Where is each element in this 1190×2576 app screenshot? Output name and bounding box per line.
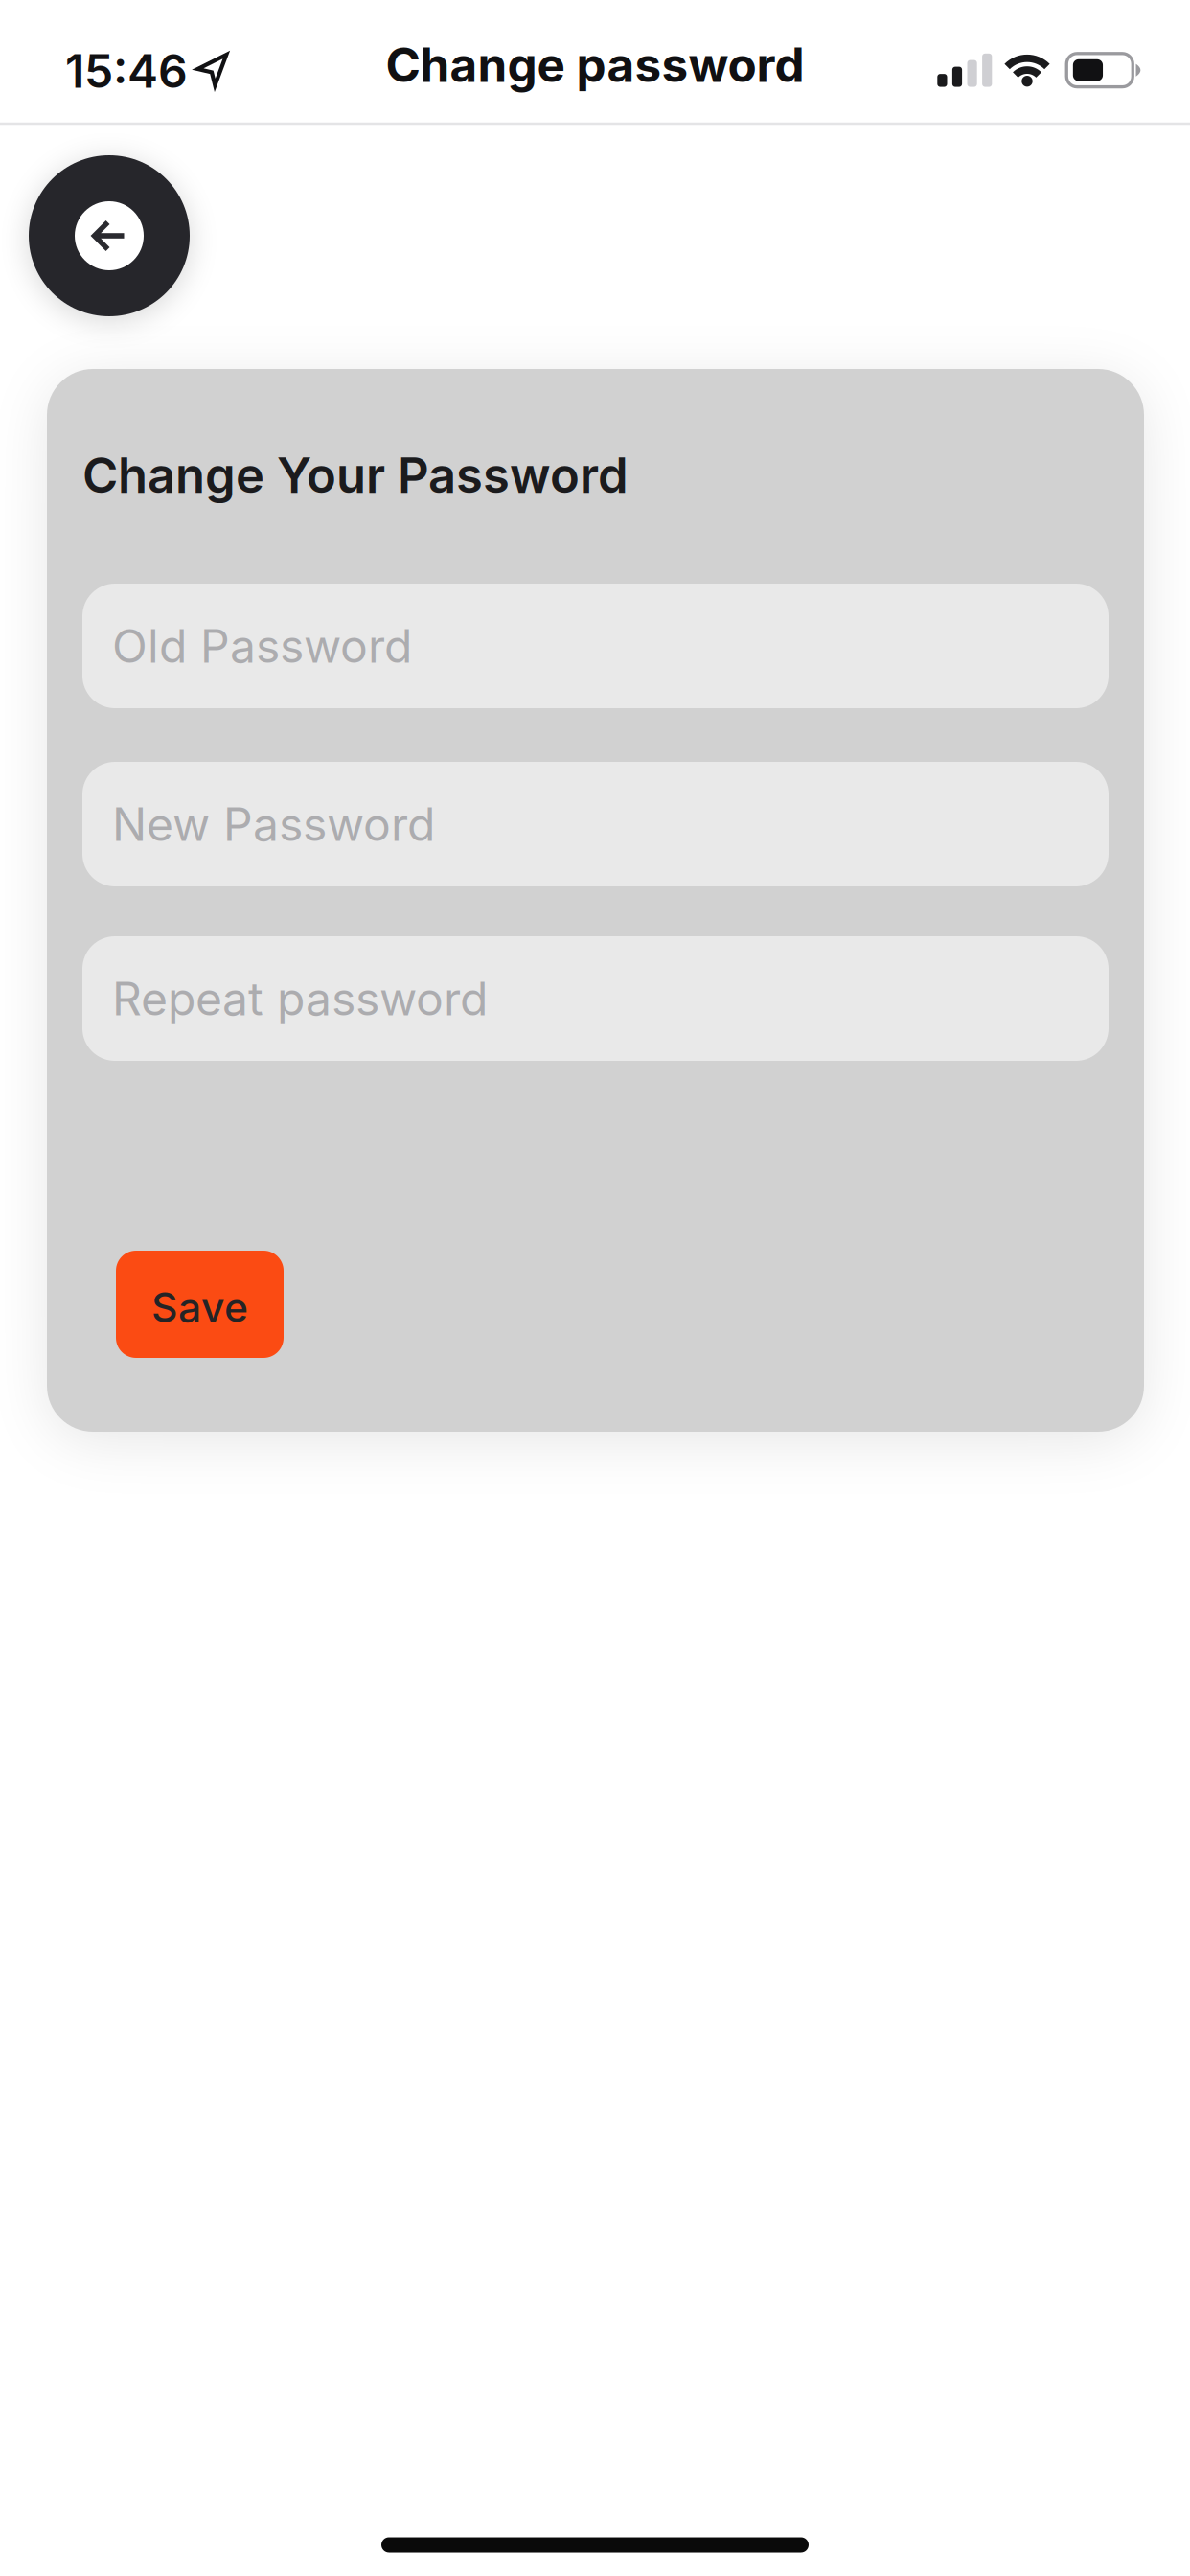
staticText: Repeat password [112, 971, 488, 1026]
button[interactable]: Save [116, 1251, 284, 1358]
staticText: New Password [112, 797, 435, 851]
staticText: Save [151, 1283, 248, 1331]
staticText: Change password [386, 37, 804, 93]
staticText: Old Password [112, 619, 412, 673]
staticText: Change Your Password [82, 447, 629, 504]
button[interactable]: Back [29, 155, 190, 316]
staticText: 15:46 [65, 44, 188, 98]
